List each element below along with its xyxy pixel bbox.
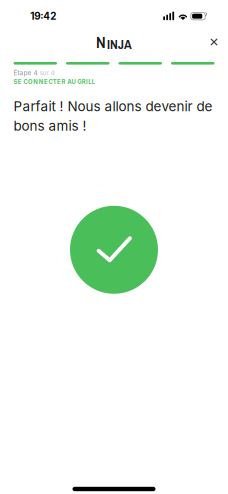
button[interactable]: Fermer [200,30,228,54]
staticText: sur 4 [37,69,54,77]
staticText: Étape 4 [13,69,37,77]
staticText: INJA [107,35,132,53]
staticText: SE CONNECTER AU GRILL [13,78,95,85]
staticText: N [96,31,106,53]
staticText: Parfait ! Nous allons devenir de bons am… [13,98,212,134]
staticText: 19:42 [30,10,56,22]
